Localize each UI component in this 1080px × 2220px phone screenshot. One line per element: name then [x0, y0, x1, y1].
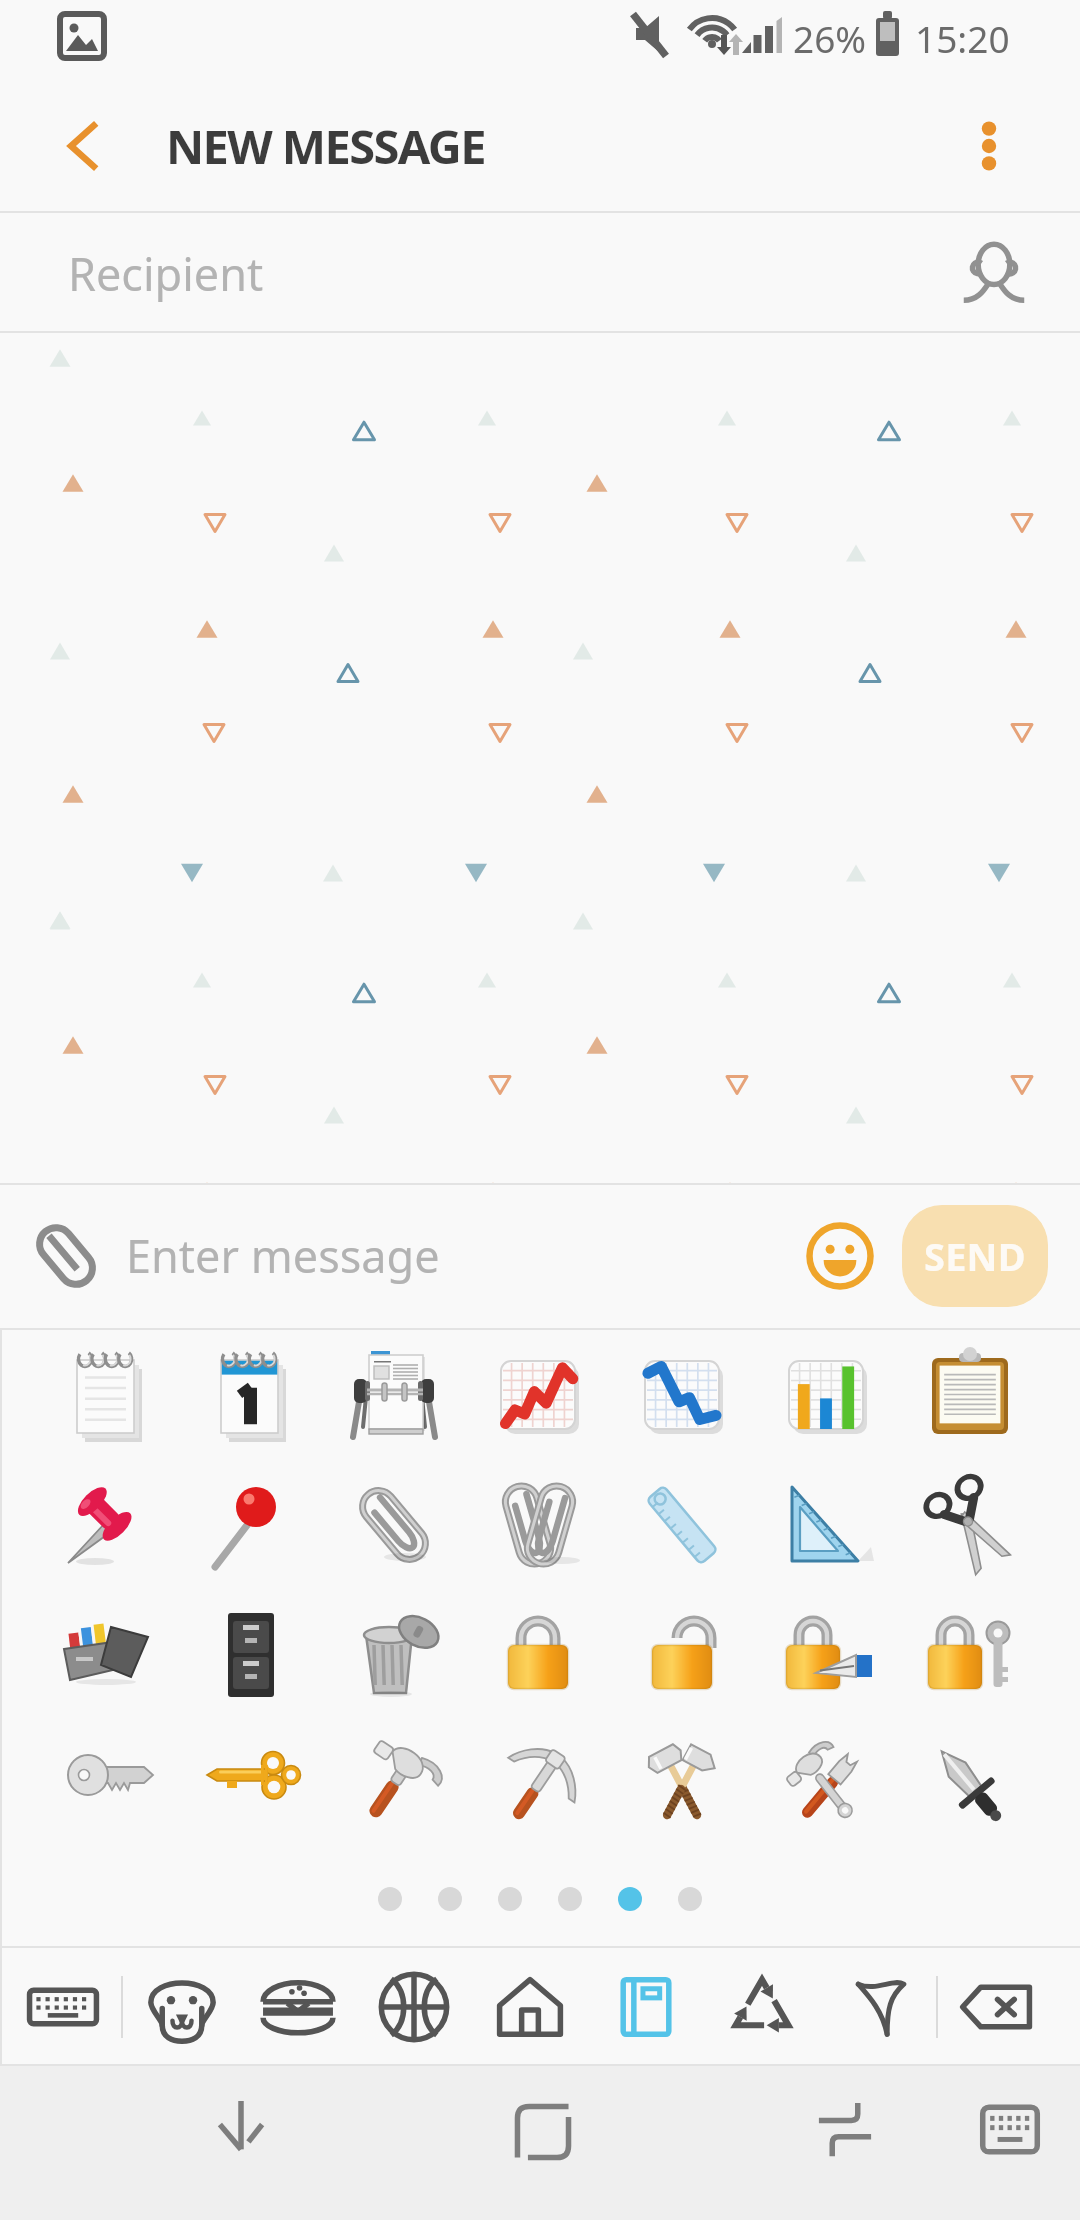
button[interactable]: Wastebasket — [322, 1590, 466, 1720]
button[interactable]: More options — [898, 78, 1080, 213]
button[interactable]: Attach file — [12, 1202, 120, 1310]
staticText: NEW MESSAGE — [166, 114, 485, 178]
button[interactable] — [498, 1887, 522, 1911]
button[interactable]: SEND — [902, 1205, 1048, 1307]
button[interactable]: Hide keyboard — [181, 2072, 301, 2192]
button[interactable]: Animals and nature — [123, 1948, 240, 2066]
button[interactable]: Bar chart — [754, 1330, 898, 1460]
staticText: 15:20 — [915, 13, 1010, 63]
button[interactable]: Round pushpin — [179, 1460, 322, 1590]
button[interactable]: Travel and places — [472, 1948, 588, 2066]
button[interactable]: Recent apps — [785, 2072, 905, 2192]
button[interactable]: File cabinet — [179, 1590, 322, 1720]
button[interactable]: Dagger — [898, 1720, 1042, 1850]
button[interactable]: Paperclip — [322, 1460, 466, 1590]
button[interactable]: Unlocked — [610, 1590, 754, 1720]
button[interactable]: Key — [36, 1720, 179, 1850]
button[interactable]: Keyboard — [4, 1948, 121, 2066]
button[interactable]: Notepad — [36, 1330, 179, 1460]
button[interactable]: Chart increasing — [466, 1330, 610, 1460]
button[interactable] — [378, 1887, 402, 1911]
staticText: Recipient — [68, 243, 264, 304]
button[interactable]: Navigate up — [0, 78, 166, 213]
button[interactable]: Objects — [588, 1948, 704, 2066]
button[interactable] — [678, 1887, 702, 1911]
button[interactable]: Insert emoji — [790, 1206, 890, 1306]
button[interactable]: Straight ruler — [610, 1460, 754, 1590]
button[interactable]: Old key — [179, 1720, 322, 1850]
button[interactable]: Pick — [466, 1720, 610, 1850]
button[interactable]: Clipboard — [898, 1330, 1042, 1460]
staticText: Enter message — [126, 1225, 440, 1286]
button[interactable]: Linked paperclips — [466, 1460, 610, 1590]
button[interactable]: Locked — [466, 1590, 610, 1720]
button[interactable]: Flags — [820, 1948, 936, 2066]
staticText: SEND — [924, 1230, 1026, 1282]
button[interactable]: Triangular ruler — [754, 1460, 898, 1590]
button[interactable]: Switch keyboard — [950, 2072, 1070, 2192]
button[interactable]: Symbols — [704, 1948, 820, 2066]
button[interactable]: Card index — [322, 1330, 466, 1460]
button[interactable]: Food and drink — [240, 1948, 356, 2066]
button[interactable]: Hammer and pick — [610, 1720, 754, 1850]
staticText: 26% — [793, 13, 867, 63]
button[interactable]: Locked with pen — [754, 1590, 898, 1720]
button[interactable]: Add recipient from contacts — [942, 221, 1046, 325]
button[interactable]: Activity — [356, 1948, 472, 2066]
button[interactable]: Scissors — [898, 1460, 1042, 1590]
button[interactable] — [618, 1887, 642, 1911]
button[interactable]: Pushpin — [36, 1460, 179, 1590]
button[interactable]: Home — [483, 2072, 603, 2192]
button[interactable]: Hammer — [322, 1720, 466, 1850]
button[interactable] — [438, 1887, 462, 1911]
button[interactable]: Hammer and wrench — [754, 1720, 898, 1850]
button[interactable]: Card file box — [36, 1590, 179, 1720]
button[interactable]: Delete — [938, 1948, 1054, 2066]
button[interactable]: Chart decreasing — [610, 1330, 754, 1460]
button[interactable]: Locked with key — [898, 1590, 1042, 1720]
button[interactable]: Calendar — [179, 1330, 322, 1460]
button[interactable] — [558, 1887, 582, 1911]
